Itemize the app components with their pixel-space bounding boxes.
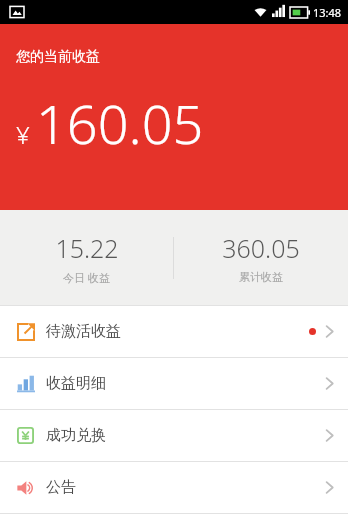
staticText: 13:48	[313, 5, 342, 20]
button[interactable]: 公告	[0, 462, 348, 513]
staticText: 成功兑换	[46, 426, 106, 445]
staticText: 今日 收益	[63, 270, 110, 285]
button[interactable]: 待激活收益	[0, 306, 348, 357]
staticText: 公告	[46, 478, 76, 497]
button[interactable]: 成功兑换	[0, 410, 348, 461]
staticText: ¥	[16, 118, 30, 151]
staticText: 您的当前收益	[16, 48, 100, 66]
staticText: 360.05	[222, 231, 300, 265]
button[interactable]: 收益明细	[0, 358, 348, 409]
staticText: 收益明细	[46, 374, 106, 393]
staticText: 160.05	[36, 86, 204, 160]
staticText: 待激活收益	[46, 322, 121, 341]
staticText: 累计收益	[239, 270, 283, 284]
staticText: 15.22	[55, 231, 119, 265]
